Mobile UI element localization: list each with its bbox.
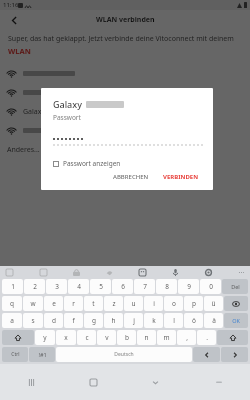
staticText: y: [43, 333, 47, 342]
button[interactable]: t: [84, 296, 103, 311]
button[interactable]: j: [124, 313, 143, 328]
button[interactable]: k: [144, 313, 163, 328]
staticText: l: [173, 316, 175, 325]
staticText: b: [125, 333, 129, 342]
button[interactable]: Tastatur-Option: [104, 267, 114, 277]
button[interactable]: b: [117, 330, 136, 345]
staticText: h: [111, 316, 116, 325]
button[interactable]: Umschalt: [2, 330, 34, 345]
staticText: d: [52, 316, 56, 325]
button[interactable]: Galaxy: [0, 102, 250, 121]
staticText: s: [31, 316, 35, 325]
button[interactable]: VERBINDEN: [159, 171, 203, 183]
button[interactable]: v: [97, 330, 116, 345]
button[interactable]: m: [157, 330, 176, 345]
button[interactable]: 8: [156, 279, 177, 294]
button[interactable]: [0, 64, 250, 83]
button[interactable]: Tastatur-Option: [38, 267, 48, 277]
staticText: 8: [165, 282, 169, 291]
button[interactable]: ä: [204, 313, 223, 328]
button[interactable]: [53, 134, 203, 146]
staticText: 7: [143, 282, 147, 291]
button[interactable]: 7: [134, 279, 155, 294]
button[interactable]: 3: [46, 279, 67, 294]
button[interactable]: x: [56, 330, 76, 345]
button[interactable]: Zurück: [6, 12, 22, 28]
button[interactable]: 5: [90, 279, 111, 294]
button[interactable]: Ctrl: [2, 347, 28, 362]
button[interactable]: Umschalt: [217, 330, 248, 345]
button[interactable]: Tastatur-Option: [170, 267, 180, 277]
staticText: Passwort anzeigen: [63, 159, 121, 168]
button[interactable]: h: [104, 313, 123, 328]
staticText: Deutsch: [114, 351, 134, 358]
button[interactable]: Zurück: [193, 347, 220, 362]
button[interactable]: Löschen: [224, 296, 248, 311]
staticText: 1: [11, 282, 15, 291]
button[interactable]: p: [184, 296, 203, 311]
staticText: g: [92, 316, 96, 325]
button[interactable]: Tastatur-Option: [71, 267, 81, 277]
button[interactable]: Tastatur-Option: [4, 267, 14, 277]
button[interactable]: Del: [222, 279, 248, 294]
button[interactable]: e: [44, 296, 63, 311]
button[interactable]: q: [2, 296, 22, 311]
button[interactable]: 1: [2, 279, 23, 294]
staticText: 4: [77, 282, 81, 291]
button[interactable]: [0, 83, 250, 102]
staticText: p: [192, 299, 196, 308]
staticText: 5: [99, 282, 103, 291]
staticText: ö: [192, 316, 196, 325]
staticText: 9: [187, 282, 191, 291]
staticText: ä: [212, 316, 216, 325]
button[interactable]: Startseite: [62, 364, 124, 400]
button[interactable]: g: [84, 313, 103, 328]
button[interactable]: Anderes...: [0, 140, 250, 159]
button[interactable]: .: [197, 330, 216, 345]
button[interactable]: f: [64, 313, 83, 328]
button[interactable]: ü: [204, 296, 223, 311]
staticText: q: [10, 299, 14, 308]
staticText: OK: [232, 317, 240, 324]
staticText: .: [206, 333, 208, 342]
staticText: Ctrl: [11, 351, 20, 358]
button[interactable]: Passwort anzeigen: [53, 159, 121, 168]
button[interactable]: y: [35, 330, 55, 345]
button[interactable]: u: [124, 296, 143, 311]
button[interactable]: l: [164, 313, 183, 328]
button[interactable]: [0, 121, 250, 140]
button[interactable]: i: [144, 296, 163, 311]
button[interactable]: Tastatur-Option: [203, 267, 213, 277]
button[interactable]: 6: [112, 279, 133, 294]
button[interactable]: r: [64, 296, 83, 311]
button[interactable]: Letzte Apps: [0, 364, 62, 400]
button[interactable]: z: [104, 296, 123, 311]
button[interactable]: Weiter: [221, 347, 248, 362]
button[interactable]: s: [23, 313, 43, 328]
button[interactable]: c: [77, 330, 96, 345]
button[interactable]: 2: [24, 279, 45, 294]
button[interactable]: a: [2, 313, 22, 328]
button[interactable]: Tastatur-Option: [236, 267, 246, 277]
button[interactable]: d: [44, 313, 63, 328]
button[interactable]: ABBRECHEN: [109, 171, 153, 183]
button[interactable]: o: [164, 296, 183, 311]
staticText: ,: [186, 333, 188, 342]
staticText: t: [92, 299, 95, 308]
button[interactable]: 0: [200, 279, 221, 294]
button[interactable]: OK: [224, 313, 248, 328]
button[interactable]: n: [137, 330, 156, 345]
button[interactable]: 9: [178, 279, 199, 294]
staticText: v: [105, 333, 109, 342]
button[interactable]: Tastatur-Option: [137, 267, 147, 277]
button[interactable]: ,: [177, 330, 196, 345]
button[interactable]: Deutsch: [56, 347, 192, 362]
button[interactable]: w: [23, 296, 43, 311]
button[interactable]: !#1: [29, 347, 55, 362]
staticText: j: [133, 316, 135, 325]
staticText: 0: [209, 282, 213, 291]
button[interactable]: ö: [184, 313, 203, 328]
button[interactable]: 4: [68, 279, 89, 294]
button[interactable]: Tastatur schließen: [124, 364, 187, 400]
